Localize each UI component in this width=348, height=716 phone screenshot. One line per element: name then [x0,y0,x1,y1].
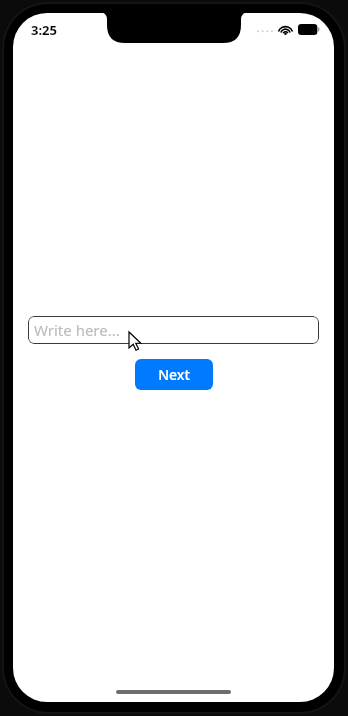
staticText: Next [158,365,190,384]
button[interactable]: Write here... [28,316,319,344]
staticText: 3:25 [31,21,57,39]
button[interactable]: Next [135,359,213,390]
staticText: Write here... [34,320,120,340]
